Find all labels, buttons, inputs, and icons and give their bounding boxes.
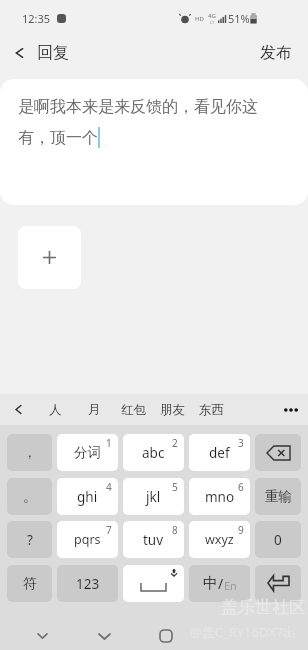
button[interactable]: 分词: [57, 434, 118, 471]
staticText: mno: [205, 488, 235, 506]
button[interactable]: 符: [7, 565, 52, 602]
button[interactable]: ，: [7, 434, 52, 471]
button[interactable]: Add image: [18, 226, 81, 289]
button[interactable]: 0: [255, 521, 301, 558]
button[interactable]: 朋友: [153, 394, 192, 425]
button[interactable]: ?: [7, 521, 52, 558]
staticText: abc: [142, 444, 165, 462]
button[interactable]: def: [189, 434, 250, 471]
staticText: 东西: [199, 402, 224, 418]
staticText: 盖乐世社区: [221, 597, 306, 618]
button[interactable]: mno: [189, 478, 250, 515]
staticText: ，: [23, 444, 37, 461]
staticText: jkl: [146, 488, 161, 506]
staticText: 8: [172, 523, 178, 537]
button[interactable]: 发布: [244, 36, 308, 70]
staticText: 红包: [121, 402, 146, 418]
staticText: tuv: [143, 531, 164, 549]
staticText: /: [218, 574, 224, 593]
staticText: 。: [23, 488, 37, 505]
button[interactable]: tuv: [123, 521, 184, 558]
staticText: 有，顶一个: [18, 128, 98, 148]
staticText: 月: [88, 402, 101, 418]
staticText: 发布: [260, 43, 292, 63]
staticText: 1: [106, 436, 112, 450]
button[interactable]: 123: [57, 565, 118, 602]
staticText: 4: [106, 480, 112, 494]
button[interactable]: Home: [154, 624, 178, 648]
button[interactable]: More: [274, 394, 308, 425]
staticText: 0: [274, 531, 282, 549]
staticText: ?: [27, 531, 33, 549]
button[interactable]: 东西: [192, 394, 231, 425]
staticText: 4G: [208, 12, 216, 20]
staticText: 9: [238, 523, 244, 537]
button[interactable]: wxyz: [189, 521, 250, 558]
button[interactable]: Back: [0, 394, 36, 425]
staticText: wxyz: [205, 531, 234, 548]
staticText: LT: [210, 20, 215, 25]
button[interactable]: 回复: [0, 36, 110, 70]
staticText: 51%: [228, 11, 250, 26]
button[interactable]: [123, 565, 184, 602]
button[interactable]: 月: [75, 394, 114, 425]
staticText: 12:35: [22, 11, 51, 26]
staticText: 回复: [37, 43, 69, 63]
button[interactable]: [255, 434, 301, 471]
button[interactable]: 是啊我本来是来反馈的，看见你这: [0, 79, 308, 205]
staticText: 123: [76, 575, 100, 593]
staticText: 3: [238, 436, 244, 450]
button[interactable]: [255, 565, 301, 602]
staticText: 6: [238, 480, 244, 494]
staticText: 符: [23, 575, 37, 592]
button[interactable]: 中: [189, 565, 250, 602]
button[interactable]: 重输: [255, 478, 301, 515]
button[interactable]: jkl: [123, 478, 184, 515]
button[interactable]: 人: [36, 394, 75, 425]
button[interactable]: pqrs: [57, 521, 118, 558]
button[interactable]: Back: [92, 624, 116, 648]
staticText: 2: [172, 436, 178, 450]
staticText: 7: [106, 523, 112, 537]
staticText: 朋友: [160, 402, 185, 418]
staticText: HD: [195, 15, 204, 23]
button[interactable]: ghi: [57, 478, 118, 515]
button[interactable]: 红包: [114, 394, 153, 425]
staticText: def: [209, 444, 230, 462]
staticText: pqrs: [74, 531, 101, 548]
button[interactable]: abc: [123, 434, 184, 471]
staticText: 分词: [74, 444, 101, 461]
staticText: ghi: [77, 488, 98, 506]
staticText: En: [224, 578, 237, 593]
staticText: 是啊我本来是来反馈的，看见你这: [18, 97, 258, 117]
staticText: 中: [203, 574, 218, 593]
staticText: 重输: [265, 488, 292, 505]
staticText: 人: [49, 402, 62, 418]
button[interactable]: 。: [7, 478, 52, 515]
staticText: 5: [172, 480, 178, 494]
button[interactable]: Hide keyboard: [30, 624, 54, 648]
